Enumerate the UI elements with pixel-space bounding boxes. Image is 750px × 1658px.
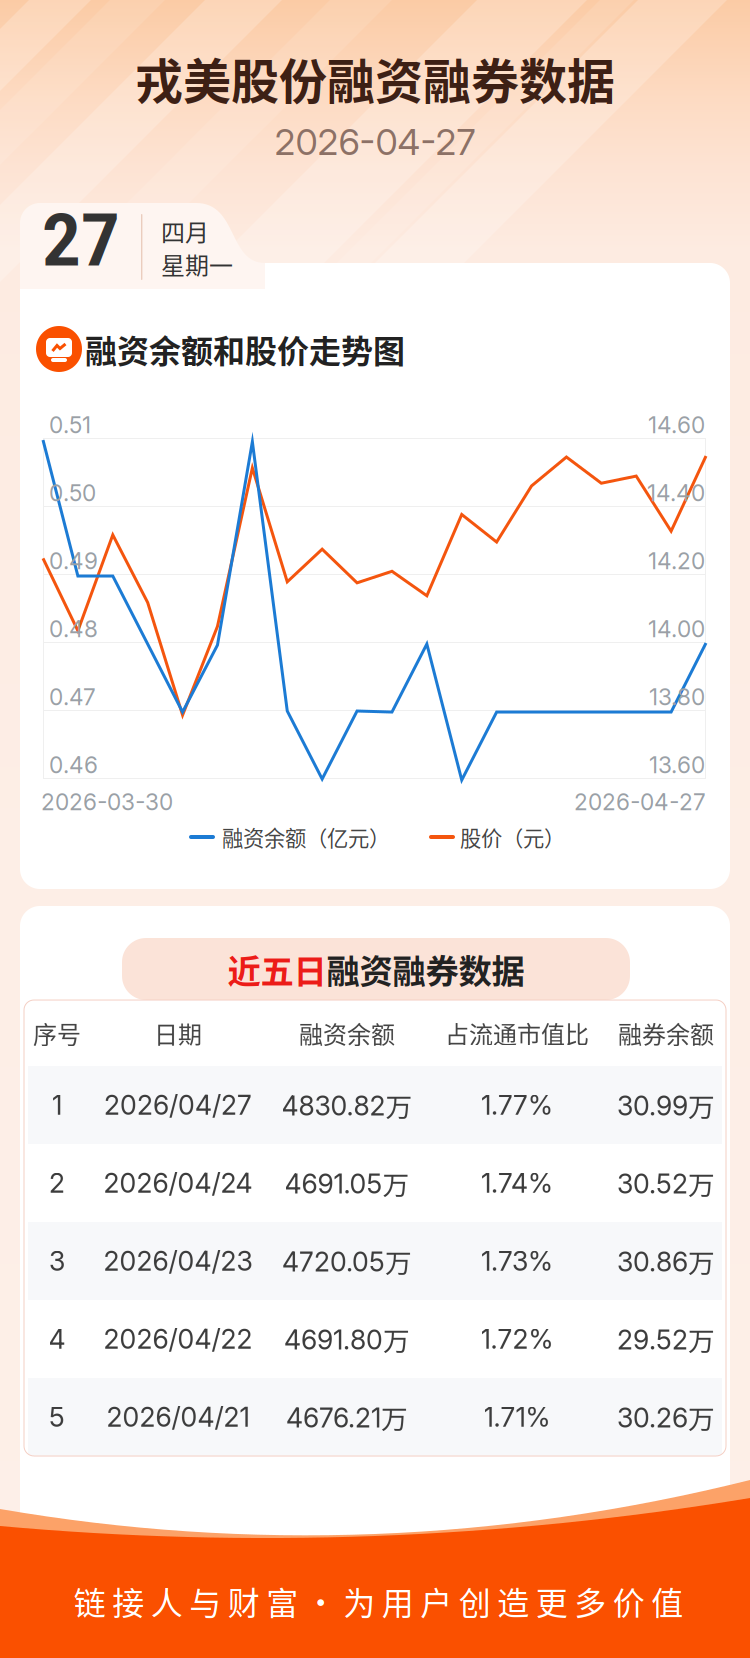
staticText: 1 [52,1089,62,1121]
staticText: 2026-04-27 [574,788,706,816]
staticText: 四月 [161,214,209,248]
staticText: 14.40 [647,479,705,507]
staticText: 链接人与财富·为用户创造更多价值 [74,1578,683,1624]
staticText: 4 [48,1323,65,1355]
staticText: 序号 [33,1016,81,1050]
staticText: 0.50 [49,479,96,507]
staticText: 4691.80万 [284,1320,410,1358]
staticText: 星期一 [161,247,233,281]
staticText: 日期 [154,1016,202,1050]
staticText: 近五日 [227,945,326,993]
staticText: 14.00 [648,615,705,643]
staticText: 2026/04/27 [104,1089,252,1121]
staticText: 1.74% [481,1167,553,1199]
staticText: 2026/04/21 [106,1401,249,1433]
staticText: 3 [49,1245,65,1277]
staticText: 29.52万 [617,1320,715,1358]
staticText: 4676.21万 [286,1398,408,1436]
staticText: 2 [49,1167,65,1199]
staticText: 2026-04-27 [274,120,475,164]
staticText: 4720.05万 [282,1242,412,1280]
staticText: 27 [42,199,120,283]
staticText: 0.48 [49,615,98,643]
staticText: 1.73% [481,1245,553,1277]
staticText: 2026/04/23 [103,1245,252,1277]
staticText: 30.99万 [617,1086,715,1124]
staticText: 14.20 [648,547,705,575]
staticText: 0.46 [49,751,98,779]
staticText: 4830.82万 [281,1086,412,1124]
staticText: 30.52万 [617,1164,715,1202]
staticText: 13.80 [649,683,705,711]
staticText: 30.26万 [617,1398,715,1436]
staticText: 2026-03-30 [41,788,173,816]
staticText: 0.47 [49,683,96,711]
staticText: 1.72% [480,1323,553,1355]
staticText: 股价（元） [460,822,565,852]
staticText: 30.86万 [617,1242,715,1280]
staticText: 0.51 [49,411,91,439]
staticText: 融券余额 [618,1016,714,1050]
staticText: 1.71% [483,1401,550,1433]
staticText: 14.60 [648,411,705,439]
staticText: 占流通市值比 [445,1016,589,1050]
staticText: 2026/04/24 [103,1167,252,1199]
staticText: 5 [49,1401,65,1433]
staticText: 0.49 [49,547,98,575]
staticText: 13.60 [649,751,705,779]
staticText: 1.77% [481,1089,553,1121]
staticText: 融资余额和股价走势图 [85,326,405,372]
staticText: 融资余额（亿元） [222,822,390,852]
staticText: 融资融券数据 [326,945,524,993]
staticText: 2026/04/22 [103,1323,252,1355]
staticText: 融资余额 [299,1016,395,1050]
staticText: 4691.05万 [284,1164,409,1202]
staticText: 戎美股份融资融券数据 [135,43,615,113]
